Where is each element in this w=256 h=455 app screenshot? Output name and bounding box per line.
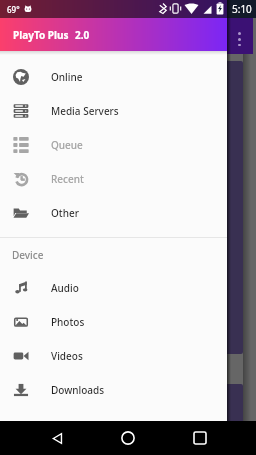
staticText: 2.0	[75, 28, 90, 42]
button[interactable]: Recent	[0, 162, 227, 196]
staticText: Media Servers	[51, 104, 119, 118]
button[interactable]: Online	[0, 60, 227, 94]
staticText: PlayTo Plus	[13, 28, 69, 42]
staticText: Downloads	[51, 383, 105, 397]
staticText: Online	[51, 70, 83, 84]
button[interactable]: Photos	[0, 305, 227, 339]
button[interactable]: Audio	[0, 271, 227, 305]
button[interactable]: Back	[42, 423, 72, 453]
button[interactable]: Queue	[0, 128, 227, 162]
button[interactable]: More options	[231, 26, 247, 46]
staticText: Other	[51, 206, 79, 220]
button[interactable]: Recents	[185, 423, 215, 453]
staticText: Photos	[51, 315, 85, 329]
button[interactable]: Media Servers	[0, 94, 227, 128]
staticText: 5:10	[232, 2, 252, 16]
staticText: Audio	[51, 281, 79, 295]
staticText: Queue	[51, 138, 83, 152]
staticText: Recent	[51, 172, 84, 186]
staticText: Videos	[51, 349, 83, 363]
button[interactable]: Downloads	[0, 373, 227, 407]
button[interactable]: Videos	[0, 339, 227, 373]
button[interactable]: Other	[0, 196, 227, 230]
staticText: Device	[12, 248, 44, 262]
button[interactable]: Home	[113, 423, 143, 453]
staticText: 69°	[7, 4, 20, 15]
